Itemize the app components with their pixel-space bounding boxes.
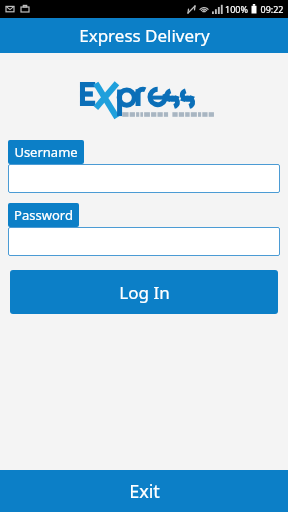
staticText: Username [14, 143, 78, 161]
other: Express delivery service logo [78, 78, 210, 118]
staticText: Password [14, 206, 73, 224]
staticText: Exit [129, 479, 160, 504]
button[interactable]: Log In [10, 270, 278, 314]
staticText: 100% [225, 3, 248, 15]
staticText: Log In [119, 281, 170, 304]
button[interactable] [8, 164, 280, 193]
staticText: 09:22 [260, 3, 284, 15]
staticText: Express Delivery [79, 24, 210, 47]
button[interactable]: Exit [0, 470, 288, 512]
button[interactable] [8, 227, 280, 256]
